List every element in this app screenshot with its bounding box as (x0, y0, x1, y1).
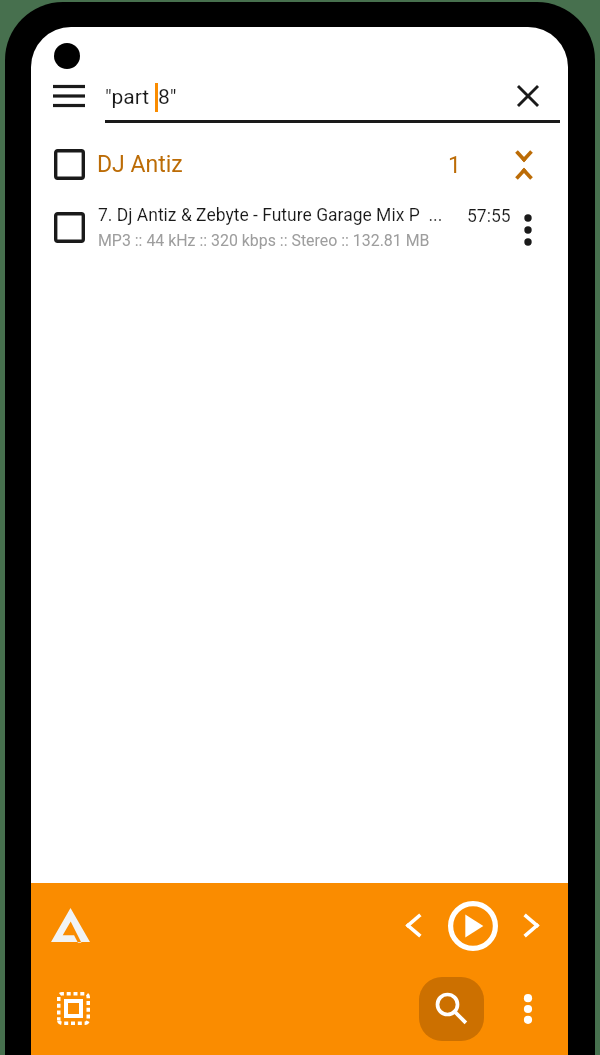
button[interactable]: 7. Dj Antiz & Zebyte - Future Garage Mix… (31, 199, 568, 255)
button[interactable]: AIMP (39, 894, 101, 956)
button[interactable]: Play (443, 896, 503, 956)
button[interactable]: Collapse group (502, 142, 546, 186)
staticText: 57:55 (467, 206, 511, 227)
button[interactable]: Previous track (390, 902, 436, 948)
staticText: DJ Antiz (97, 151, 183, 178)
staticText: "part (105, 85, 155, 110)
button[interactable]: Search (419, 977, 484, 1041)
staticText: MP3 :: 44 kHz :: 320 kbps :: Stereo :: 1… (98, 231, 430, 250)
button[interactable]: Next track (508, 902, 554, 948)
button[interactable]: More options (502, 983, 554, 1035)
staticText: 7. Dj Antiz & Zebyte - Future Garage Mix… (98, 205, 443, 226)
button[interactable]: DJ Antiz (31, 138, 568, 190)
staticText: 8" (158, 85, 177, 110)
button[interactable]: Track options (508, 204, 548, 244)
button[interactable]: Select all (47, 982, 99, 1034)
staticText: 1 (448, 152, 461, 179)
button[interactable]: Clear search (506, 74, 550, 118)
button[interactable]: Menu (45, 72, 93, 120)
